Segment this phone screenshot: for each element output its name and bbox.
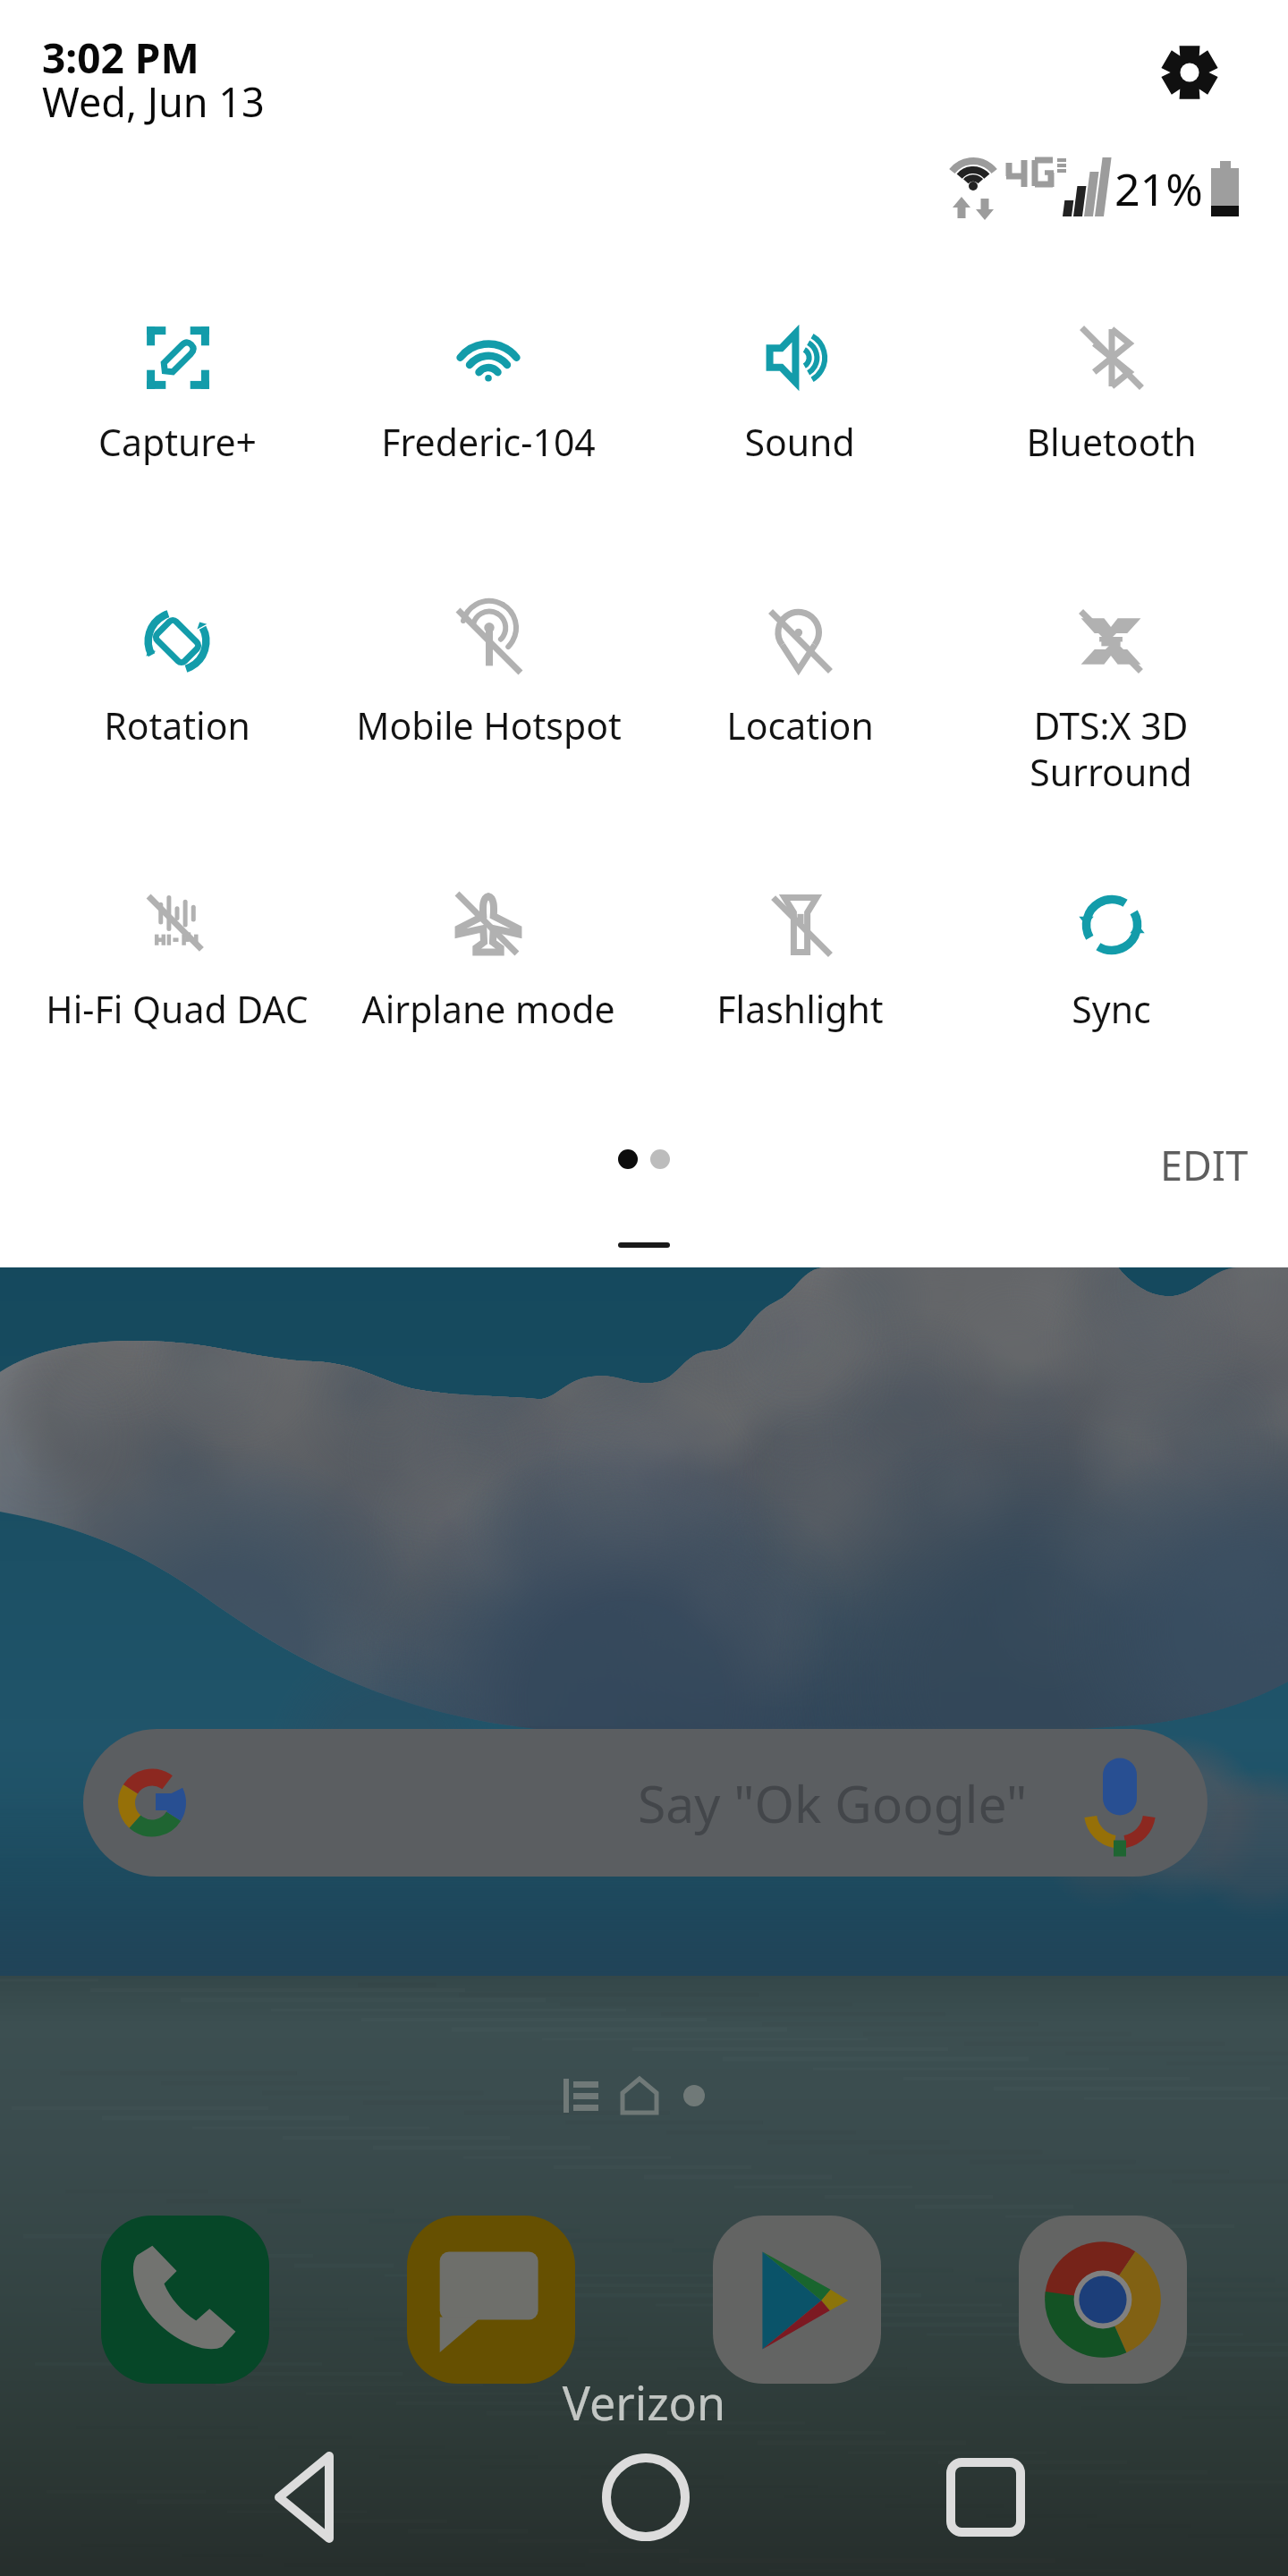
button[interactable]: Flashlight bbox=[644, 826, 955, 1086]
staticText: Frederic-104 bbox=[381, 417, 596, 467]
staticText: Hi-Fi Quad DAC bbox=[46, 984, 309, 1034]
button[interactable]: Home screen pages bbox=[563, 2073, 733, 2118]
staticText: Say "Ok Google" bbox=[638, 1768, 1028, 1838]
staticText: 3:02 PM bbox=[42, 30, 199, 86]
button[interactable]: Capture+ bbox=[21, 259, 333, 519]
button[interactable]: Frederic-104 bbox=[333, 259, 644, 519]
staticText: Wed, Jun 13 bbox=[42, 74, 265, 129]
staticText: Capture+ bbox=[98, 417, 257, 467]
button[interactable]: Phone bbox=[101, 2216, 269, 2384]
button[interactable]: DTS:X 3D Surround bbox=[955, 543, 1267, 802]
button[interactable]: Play Store bbox=[713, 2216, 881, 2384]
button[interactable]: Chrome bbox=[1019, 2216, 1187, 2384]
button[interactable]: Bluetooth bbox=[955, 259, 1267, 519]
button[interactable]: Airplane mode bbox=[333, 826, 644, 1086]
button[interactable]: Sound bbox=[644, 259, 955, 519]
staticText: Rotation bbox=[104, 700, 250, 750]
staticText: 21% bbox=[1114, 158, 1203, 219]
button[interactable]: Messages bbox=[407, 2216, 575, 2384]
button[interactable]: Location bbox=[644, 543, 955, 802]
button[interactable]: Back bbox=[199, 2426, 413, 2576]
button[interactable]: Mobile Hotspot bbox=[333, 543, 644, 802]
button[interactable]: Recent apps bbox=[878, 2426, 1093, 2576]
staticText: EDIT bbox=[1160, 1138, 1249, 1192]
staticText: Bluetooth bbox=[1026, 417, 1197, 467]
staticText: Airplane mode bbox=[361, 984, 615, 1034]
button[interactable]: Hi-Fi Quad DAC bbox=[21, 826, 333, 1086]
button[interactable]: Sync bbox=[955, 826, 1267, 1086]
staticText: DTS:X 3D Surround bbox=[1030, 700, 1192, 797]
button[interactable]: Search bbox=[83, 1729, 1207, 1877]
staticText: Sound bbox=[744, 417, 855, 467]
staticText: Sync bbox=[1072, 984, 1151, 1034]
staticText: Flashlight bbox=[716, 984, 884, 1034]
staticText: Location bbox=[726, 700, 874, 750]
button[interactable]: EDIT bbox=[1160, 1138, 1249, 1192]
button[interactable]: Settings bbox=[1161, 44, 1218, 101]
staticText: Verizon bbox=[0, 2370, 1288, 2434]
button[interactable]: Home bbox=[538, 2426, 753, 2576]
button[interactable]: Rotation bbox=[21, 543, 333, 802]
staticText: Mobile Hotspot bbox=[356, 700, 622, 750]
